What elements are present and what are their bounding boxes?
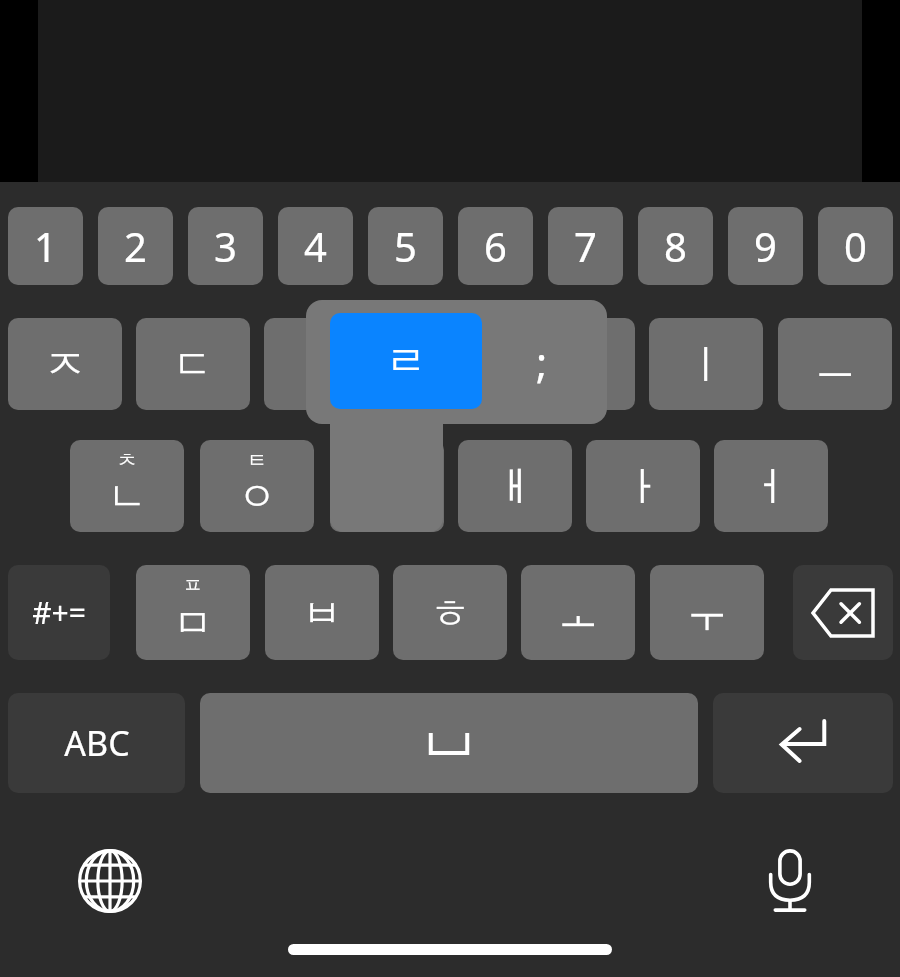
staticText: ㅁ xyxy=(173,598,213,648)
button[interactable]: ABC xyxy=(8,693,185,793)
button[interactable]: Dictation xyxy=(752,843,828,919)
staticText: ㅣ xyxy=(686,339,726,389)
staticText: 8 xyxy=(664,219,687,273)
staticText: ㄹ xyxy=(385,335,427,388)
staticText: ㅎ xyxy=(430,588,470,638)
button[interactable]: ㅊ xyxy=(70,440,184,532)
button[interactable]: ㅌ xyxy=(200,440,314,532)
staticText: ㅍ xyxy=(183,573,203,598)
button[interactable]: ; xyxy=(482,313,602,409)
staticText: 6 xyxy=(484,219,507,273)
button[interactable]: ㅓ xyxy=(714,440,828,532)
button[interactable]: ㅡ xyxy=(778,318,892,410)
button[interactable]: ㅂ xyxy=(265,565,379,660)
button[interactable]: 0 xyxy=(818,207,893,285)
staticText: 7 xyxy=(574,219,597,273)
staticText: ㅂ xyxy=(302,588,342,638)
button[interactable]: ㅎ xyxy=(393,565,507,660)
staticText: 0 xyxy=(844,219,867,273)
staticText: ㅜ xyxy=(687,588,727,638)
button[interactable] xyxy=(330,440,444,532)
staticText: ㅡ xyxy=(815,339,855,389)
staticText: ㅏ xyxy=(623,461,663,511)
button[interactable]: 3 xyxy=(188,207,263,285)
button[interactable]: ㅗ xyxy=(521,565,635,660)
button[interactable]: 8 xyxy=(638,207,713,285)
staticText: ㅐ xyxy=(495,461,535,511)
button[interactable]: Space xyxy=(200,693,698,793)
staticText: #+= xyxy=(32,592,86,633)
staticText: ㄴ xyxy=(107,471,147,521)
button[interactable]: 2 xyxy=(98,207,173,285)
staticText: ㅌ xyxy=(247,448,267,473)
staticText: 1 xyxy=(34,219,57,273)
button[interactable] xyxy=(521,318,635,410)
staticText: ABC xyxy=(64,720,130,766)
button[interactable]: ㅈ xyxy=(8,318,122,410)
button[interactable]: ㄷ xyxy=(136,318,250,410)
staticText: 5 xyxy=(394,219,417,273)
staticText: ㅇ xyxy=(237,471,277,521)
staticText: ㅊ xyxy=(117,448,137,473)
staticText: ㅗ xyxy=(558,588,598,638)
button[interactable]: ㅏ xyxy=(586,440,700,532)
staticText: ; xyxy=(536,333,548,390)
button[interactable]: Change keyboard xyxy=(72,843,148,919)
button[interactable]: #+= xyxy=(8,565,110,660)
button[interactable]: ㅐ xyxy=(458,440,572,532)
button[interactable]: 6 xyxy=(458,207,533,285)
button[interactable]: 1 xyxy=(8,207,83,285)
staticText: 9 xyxy=(754,219,777,273)
button[interactable]: ㅍ xyxy=(136,565,250,660)
button[interactable]: ㅜ xyxy=(650,565,764,660)
button[interactable]: 7 xyxy=(548,207,623,285)
button[interactable] xyxy=(392,318,506,410)
staticText: 2 xyxy=(124,219,147,273)
button[interactable]: 9 xyxy=(728,207,803,285)
staticText: 4 xyxy=(304,219,327,273)
staticText: ㅓ xyxy=(751,461,791,511)
button[interactable]: 4 xyxy=(278,207,353,285)
button[interactable]: ㅣ xyxy=(649,318,763,410)
staticText: ㄷ xyxy=(173,339,213,389)
button[interactable]: 5 xyxy=(368,207,443,285)
button[interactable]: Return xyxy=(713,693,893,793)
button[interactable]: Backspace xyxy=(793,565,893,660)
staticText: 3 xyxy=(214,219,237,273)
button[interactable] xyxy=(264,318,378,410)
button[interactable]: ㄹ xyxy=(330,313,482,409)
staticText: ㅈ xyxy=(45,339,85,389)
